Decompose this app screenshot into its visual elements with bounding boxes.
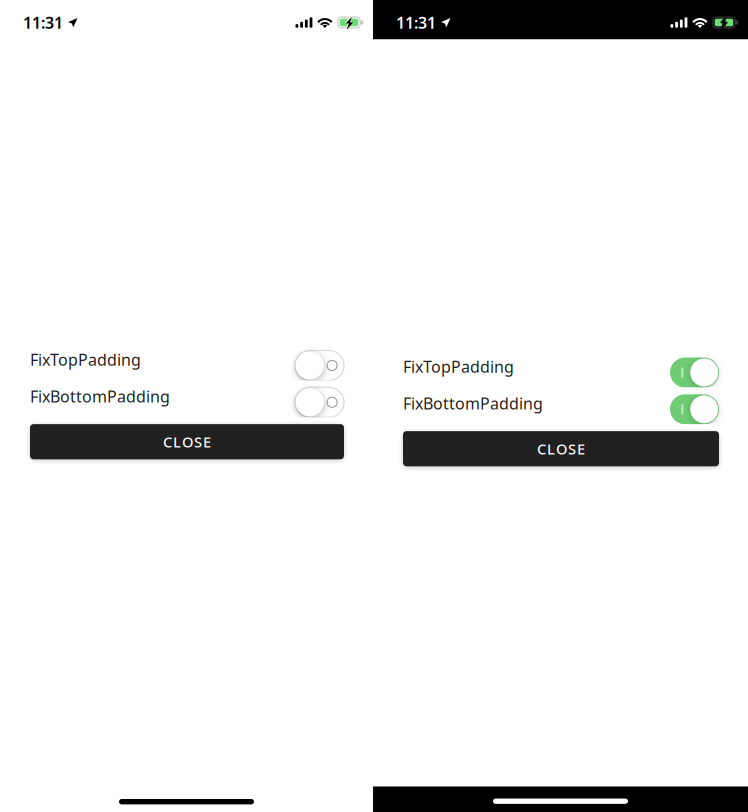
button[interactable]: CLOSE [403, 431, 719, 466]
staticText: FixTopPadding [30, 349, 141, 370]
button[interactable]: CLOSE [30, 424, 344, 459]
staticText: 11:31 [23, 12, 63, 33]
button[interactable]: Switch on [670, 357, 719, 387]
staticText: FixBottomPadding [403, 393, 543, 414]
staticText: CLOSE [163, 432, 211, 451]
staticText: FixBottomPadding [30, 386, 170, 407]
button[interactable]: Switch off [295, 387, 344, 417]
staticText: CLOSE [537, 439, 585, 458]
button[interactable]: Switch off [295, 350, 344, 380]
staticText: FixTopPadding [403, 356, 514, 377]
button[interactable]: Switch on [670, 394, 719, 424]
staticText: 11:31 [396, 12, 436, 33]
